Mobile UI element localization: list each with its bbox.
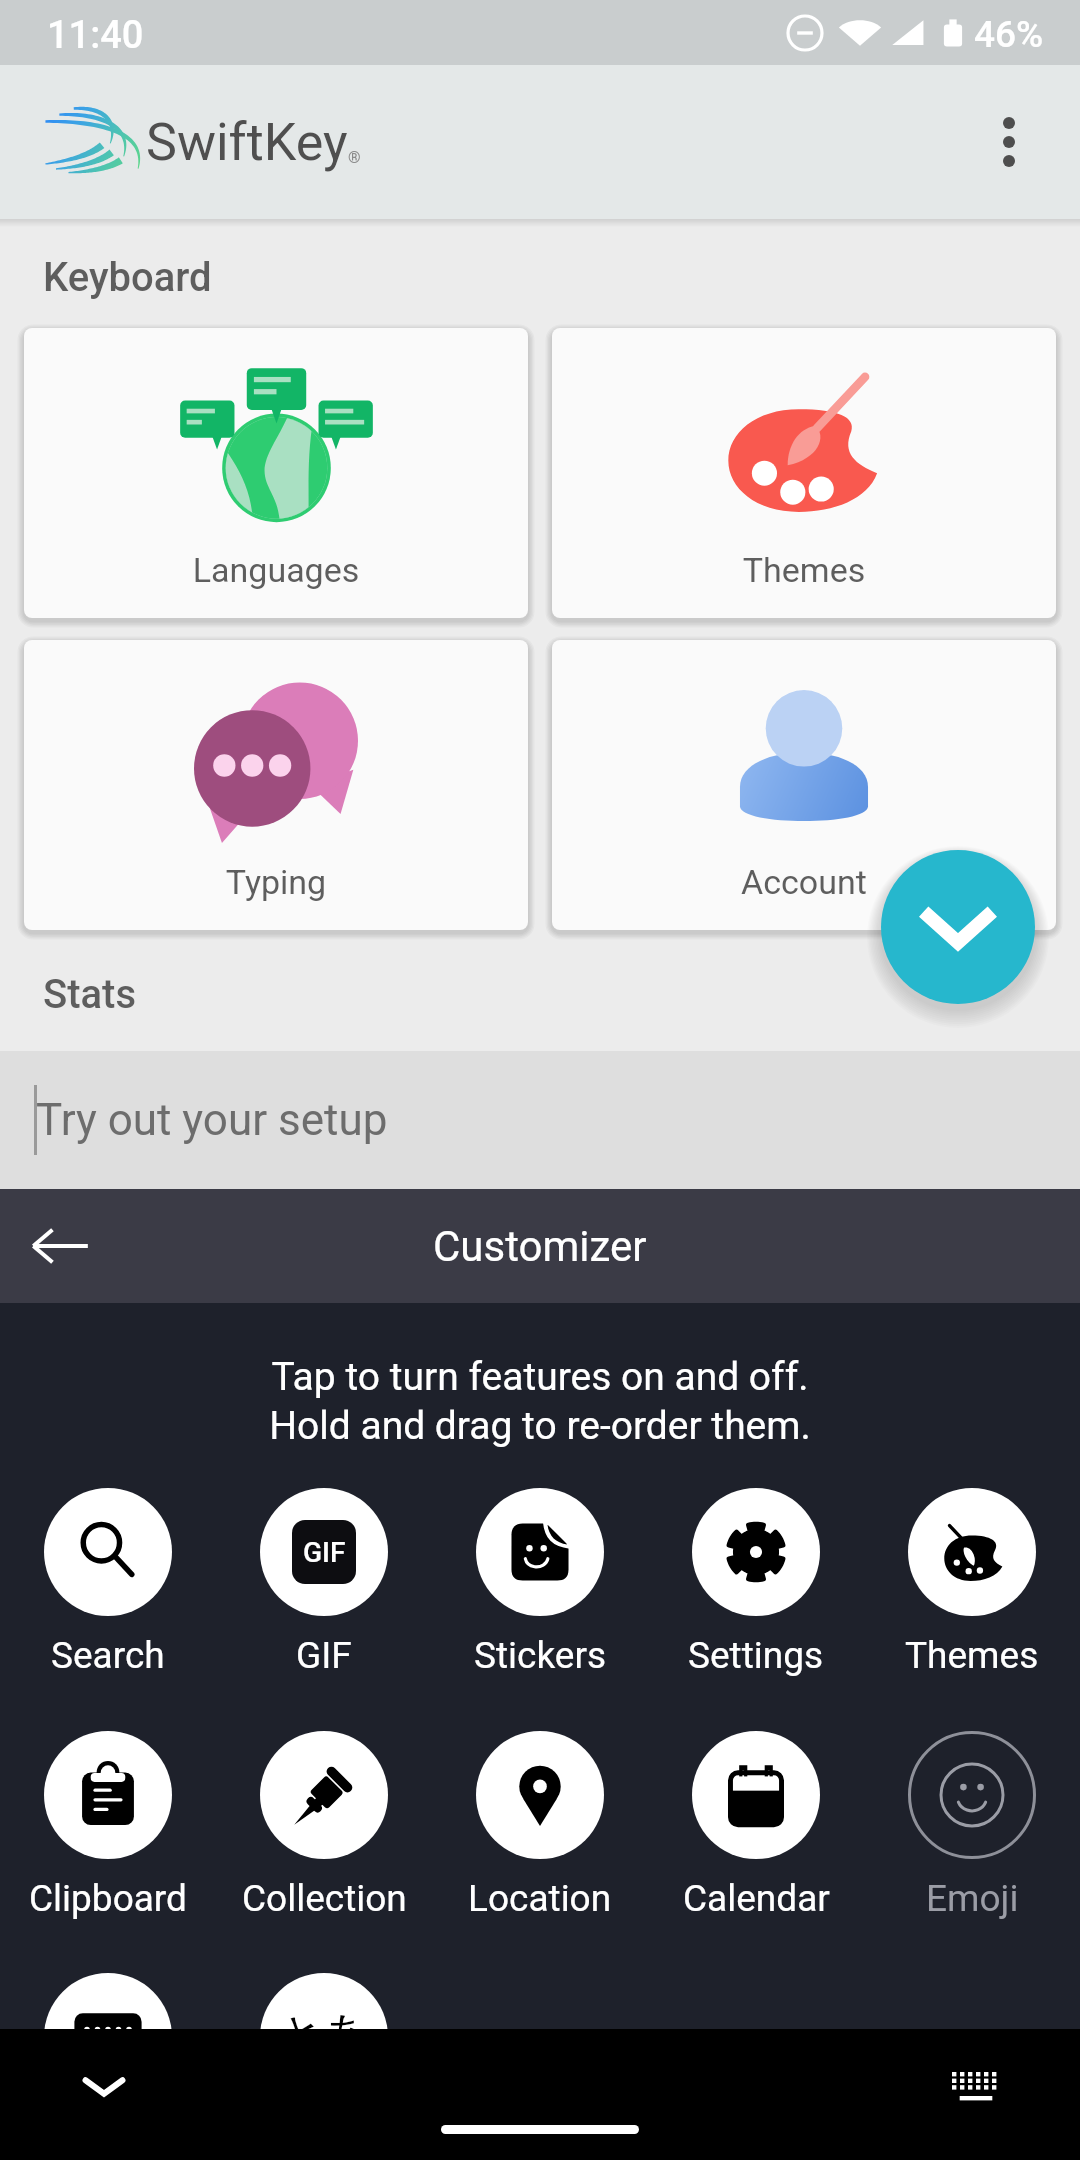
- button[interactable]: Stickers: [432, 1488, 648, 1677]
- button[interactable]: GIF: [216, 1488, 432, 1677]
- staticText: GIF: [303, 1536, 346, 1569]
- button[interactable]: とあ: [216, 1973, 432, 2101]
- staticText: Search: [51, 1634, 165, 1677]
- button[interactable]: Switch keyboard: [944, 2055, 1008, 2119]
- staticText: Stats: [43, 971, 137, 1018]
- staticText: Typing: [24, 862, 528, 902]
- staticText: Collection: [242, 1877, 407, 1920]
- button[interactable]: Back: [12, 1198, 108, 1294]
- button[interactable]: Themes: [552, 328, 1056, 618]
- button[interactable]: More options: [964, 97, 1054, 187]
- staticText: 11:40: [47, 13, 144, 58]
- button[interactable]: Settings: [648, 1488, 864, 1677]
- staticText: Tap to turn features on and off. Hold an…: [0, 1354, 1080, 1448]
- button[interactable]: Location: [432, 1731, 648, 1920]
- staticText: とあ: [279, 2006, 370, 2061]
- staticText: SwiftKey: [146, 112, 348, 173]
- button[interactable]: Typing: [24, 640, 528, 930]
- staticText: GIF: [296, 1634, 352, 1677]
- button[interactable]: Account: [552, 640, 1056, 930]
- staticText: Settings: [688, 1634, 824, 1677]
- button[interactable]: Try out your setup: [0, 1051, 1080, 1189]
- staticText: Location: [468, 1877, 612, 1920]
- button[interactable]: Calendar: [648, 1731, 864, 1920]
- staticText: Calendar: [683, 1877, 830, 1920]
- staticText: Themes: [552, 550, 1056, 590]
- button[interactable]: Expand: [881, 850, 1035, 1004]
- staticText: Languages: [24, 550, 528, 590]
- button[interactable]: Search: [0, 1488, 216, 1677]
- staticText: Keyboard: [43, 254, 212, 301]
- staticText: Clipboard: [29, 1877, 187, 1920]
- staticText: Try out your setup: [36, 1094, 388, 1146]
- staticText: Emoji: [926, 1877, 1019, 1920]
- staticText: Account: [552, 862, 1056, 902]
- button[interactable]: Themes: [864, 1488, 1080, 1677]
- staticText: Customizer: [433, 1222, 647, 1271]
- button[interactable]: Emoji: [864, 1731, 1080, 1920]
- staticText: ®: [348, 148, 361, 167]
- staticText: Themes: [905, 1634, 1039, 1677]
- button[interactable]: Hide keyboard: [72, 2055, 136, 2119]
- button[interactable]: Collection: [216, 1731, 432, 1920]
- button[interactable]: Clipboard: [0, 1731, 216, 1920]
- staticText: 46%: [974, 13, 1044, 56]
- staticText: Stickers: [474, 1634, 607, 1677]
- button[interactable]: Languages: [24, 328, 528, 618]
- button[interactable]: [0, 1973, 216, 2101]
